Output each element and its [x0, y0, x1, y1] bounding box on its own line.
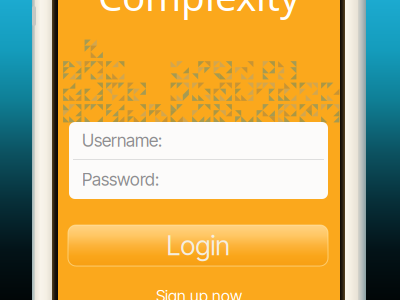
button[interactable]: Sign up now: [58, 286, 340, 300]
staticText: Password:: [82, 169, 159, 190]
staticText: Sign up now: [156, 286, 242, 300]
staticText: Login: [166, 229, 229, 262]
staticText: Complexity: [98, 0, 300, 22]
staticText: Username:: [82, 130, 162, 151]
button[interactable]: Login: [68, 225, 328, 266]
